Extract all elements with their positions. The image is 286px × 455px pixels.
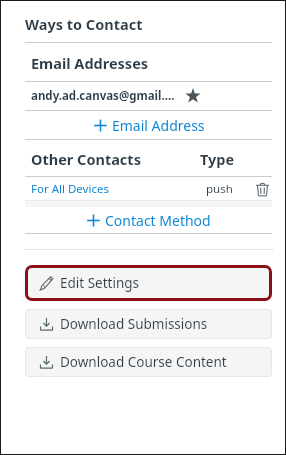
button[interactable]: For All Devices	[25, 177, 272, 200]
staticText: Email Addresses	[31, 53, 149, 73]
staticText: Ways to Contact	[25, 14, 143, 34]
staticText: For All Devices	[31, 181, 109, 197]
staticText: push	[206, 181, 233, 197]
staticText: Email Address	[112, 116, 205, 135]
button[interactable]: Email Address	[25, 111, 272, 139]
button[interactable]: Download Course Content	[25, 347, 272, 377]
button[interactable]: Edit Settings	[28, 268, 269, 298]
staticText: Download Submissions	[60, 315, 208, 333]
staticText: andy.ad.canvas@gmail....	[31, 88, 175, 104]
button[interactable]: andy.ad.canvas@gmail....	[25, 82, 272, 110]
staticText: Type	[200, 149, 272, 169]
staticText: Other Contacts	[31, 149, 141, 169]
button[interactable]: Delete contact method	[252, 179, 272, 199]
button[interactable]: Download Submissions	[25, 309, 272, 339]
staticText: Download Course Content	[60, 353, 227, 371]
staticText: Contact Method	[105, 211, 211, 230]
button[interactable]: Contact Method	[25, 207, 272, 233]
staticText: Edit Settings	[60, 274, 140, 292]
